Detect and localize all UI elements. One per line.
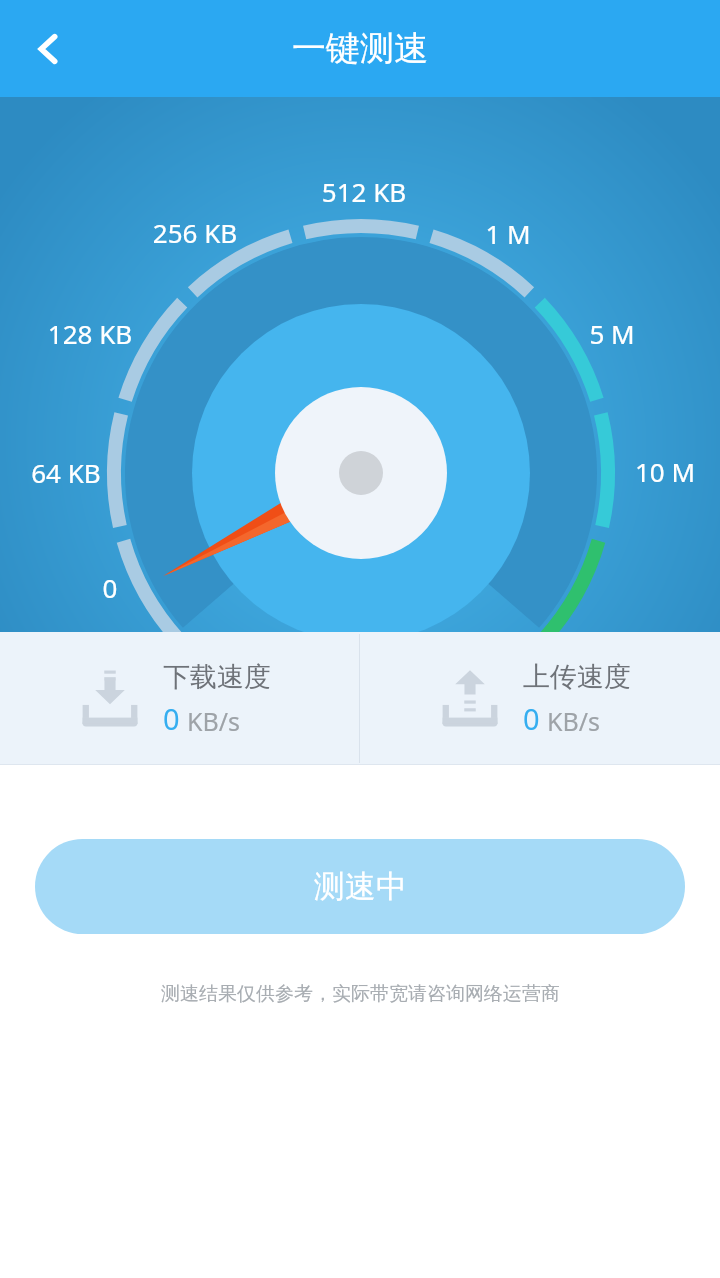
- staticText: 5 M: [542, 316, 682, 351]
- staticText: KB/s: [187, 704, 241, 738]
- staticText: 256 KB: [125, 215, 265, 250]
- staticText: 1 M: [438, 216, 578, 251]
- staticText: 128 KB: [20, 316, 160, 351]
- staticText: 上传速度: [523, 660, 631, 694]
- staticText: 64 KB: [0, 455, 136, 490]
- staticText: 512 KB: [294, 174, 434, 209]
- staticText: 测速中: [314, 867, 407, 906]
- staticText: 下载速度: [163, 660, 271, 694]
- button[interactable]: 测速中: [35, 839, 685, 934]
- staticText: 0: [163, 699, 180, 738]
- button[interactable]: Upload speed: [360, 632, 720, 765]
- other: Upload speed: [433, 662, 507, 736]
- staticText: 0: [523, 699, 540, 738]
- button[interactable]: Download speed: [0, 632, 359, 765]
- staticText: 0: [40, 570, 180, 605]
- other: Download speed: [73, 662, 147, 736]
- button[interactable]: Back: [14, 15, 82, 83]
- staticText: 一键测速: [292, 27, 428, 70]
- staticText: 10 M: [595, 454, 720, 489]
- staticText: 测速结果仅供参考，实际带宽请咨询网络运营商: [161, 982, 560, 1006]
- staticText: KB/s: [547, 704, 601, 738]
